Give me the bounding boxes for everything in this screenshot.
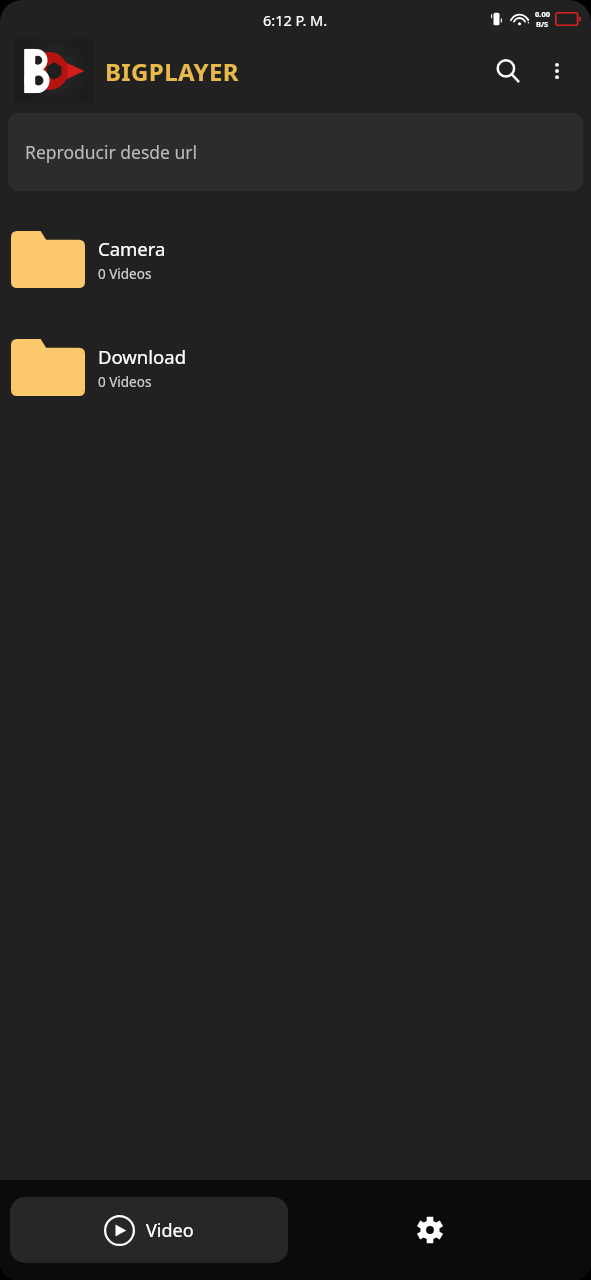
- button[interactable]: Settings: [397, 1197, 463, 1263]
- staticText: Reproducir desde url: [25, 140, 198, 164]
- button[interactable]: Camera: [0, 223, 591, 295]
- staticText: Video: [146, 1218, 194, 1243]
- staticText: 6:12 P. M.: [263, 10, 328, 30]
- staticText: B/S: [536, 19, 549, 29]
- button[interactable]: BigPlayer logo: [14, 39, 94, 103]
- staticText: 0.00: [535, 9, 550, 19]
- staticText: 0 Videos: [98, 373, 152, 391]
- staticText: Download: [98, 344, 187, 369]
- staticText: 0 Videos: [98, 265, 152, 283]
- staticText: Camera: [98, 236, 166, 261]
- staticText: BIGPLAYER: [105, 55, 239, 88]
- button[interactable]: Search: [485, 48, 531, 94]
- button[interactable]: More options: [537, 51, 577, 91]
- button[interactable]: Reproducir desde url: [8, 113, 583, 191]
- button[interactable]: Download: [0, 331, 591, 403]
- button[interactable]: Video: [10, 1197, 288, 1263]
